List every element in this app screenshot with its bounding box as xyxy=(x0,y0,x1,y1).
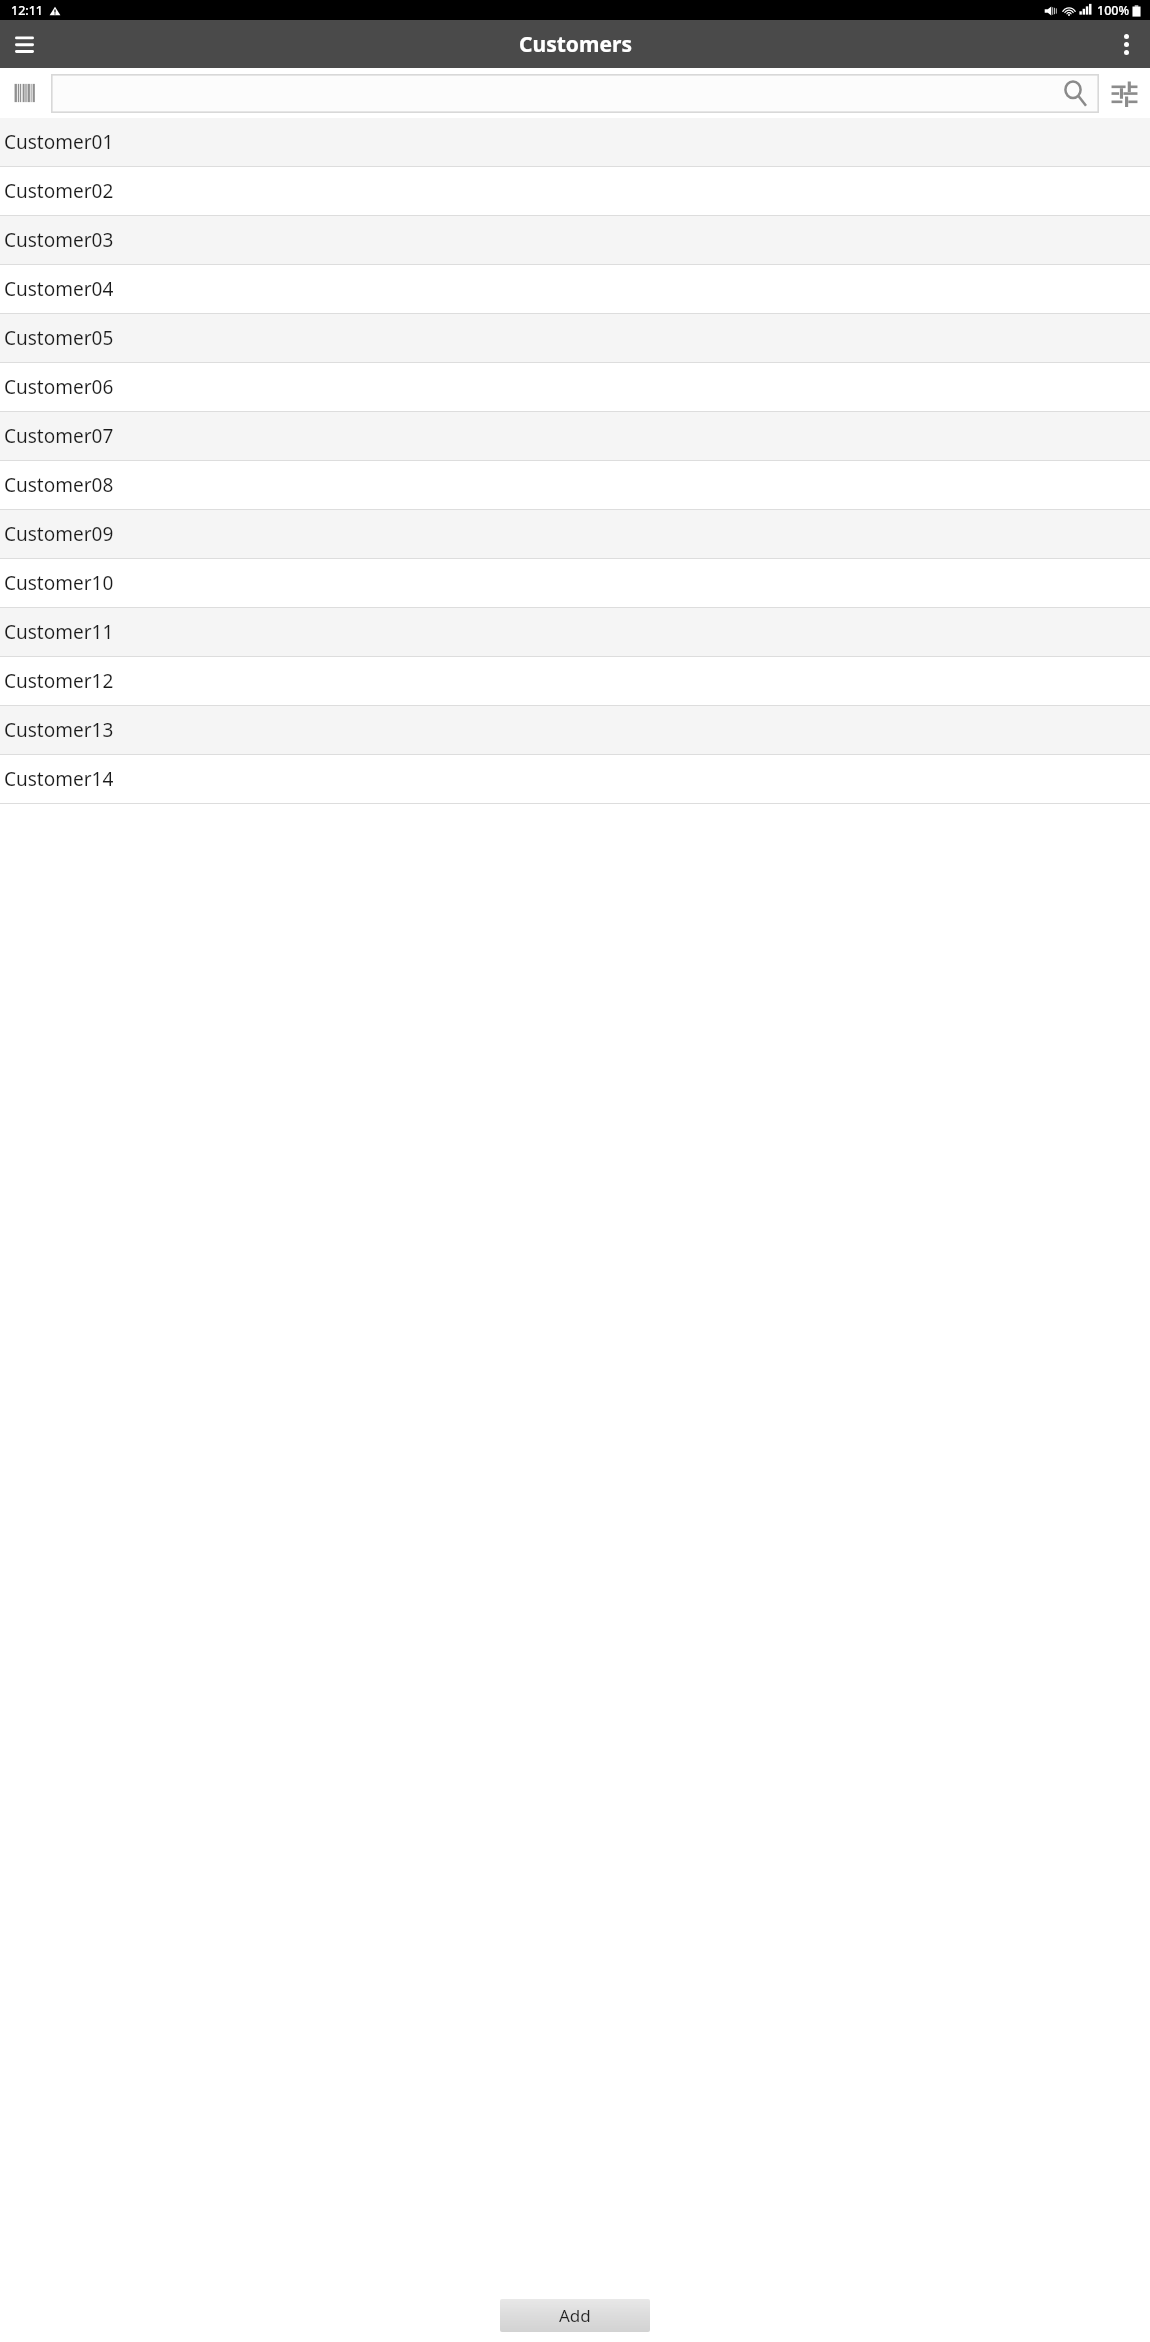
staticText: Customer06 xyxy=(4,374,114,400)
staticText: Customer07 xyxy=(4,423,114,449)
button[interactable]: Scan barcode xyxy=(0,68,51,118)
staticText: Customer01 xyxy=(4,129,114,155)
button[interactable]: Open navigation menu xyxy=(0,20,48,68)
button[interactable]: Customer10 xyxy=(0,559,1150,607)
staticText: Customer08 xyxy=(4,472,114,498)
staticText: Add xyxy=(559,2304,591,2327)
button[interactable]: Customer02 xyxy=(0,167,1150,215)
staticText: Customer10 xyxy=(4,570,114,596)
staticText: 12:11 xyxy=(11,2,44,19)
button[interactable]: Add xyxy=(500,2299,650,2332)
button[interactable]: Customer05 xyxy=(0,314,1150,362)
staticText: Customer02 xyxy=(4,178,114,204)
staticText: Customer04 xyxy=(4,276,114,302)
button[interactable]: Filter settings xyxy=(1099,68,1150,118)
staticText: Customers xyxy=(519,30,632,59)
button[interactable]: Customer04 xyxy=(0,265,1150,313)
staticText: Customer12 xyxy=(4,668,114,694)
staticText: Customer05 xyxy=(4,325,114,351)
button[interactable]: Customer12 xyxy=(0,657,1150,705)
staticText: 100% xyxy=(1097,2,1130,19)
button[interactable]: Customer14 xyxy=(0,755,1150,803)
staticText: Customer03 xyxy=(4,227,114,253)
button[interactable]: Customer08 xyxy=(0,461,1150,509)
button[interactable]: Customer09 xyxy=(0,510,1150,558)
button[interactable]: More options xyxy=(1102,20,1150,68)
staticText: Customer09 xyxy=(4,521,114,547)
button[interactable]: Customer06 xyxy=(0,363,1150,411)
button[interactable]: Customer07 xyxy=(0,412,1150,460)
staticText: Customer13 xyxy=(4,717,114,743)
button[interactable]: Customer11 xyxy=(0,608,1150,656)
button[interactable]: Customer03 xyxy=(0,216,1150,264)
staticText: Customer14 xyxy=(4,766,114,792)
staticText: Customer11 xyxy=(4,619,114,645)
button[interactable]: Customer13 xyxy=(0,706,1150,754)
button[interactable] xyxy=(51,74,1099,113)
button[interactable]: Customer01 xyxy=(0,118,1150,166)
